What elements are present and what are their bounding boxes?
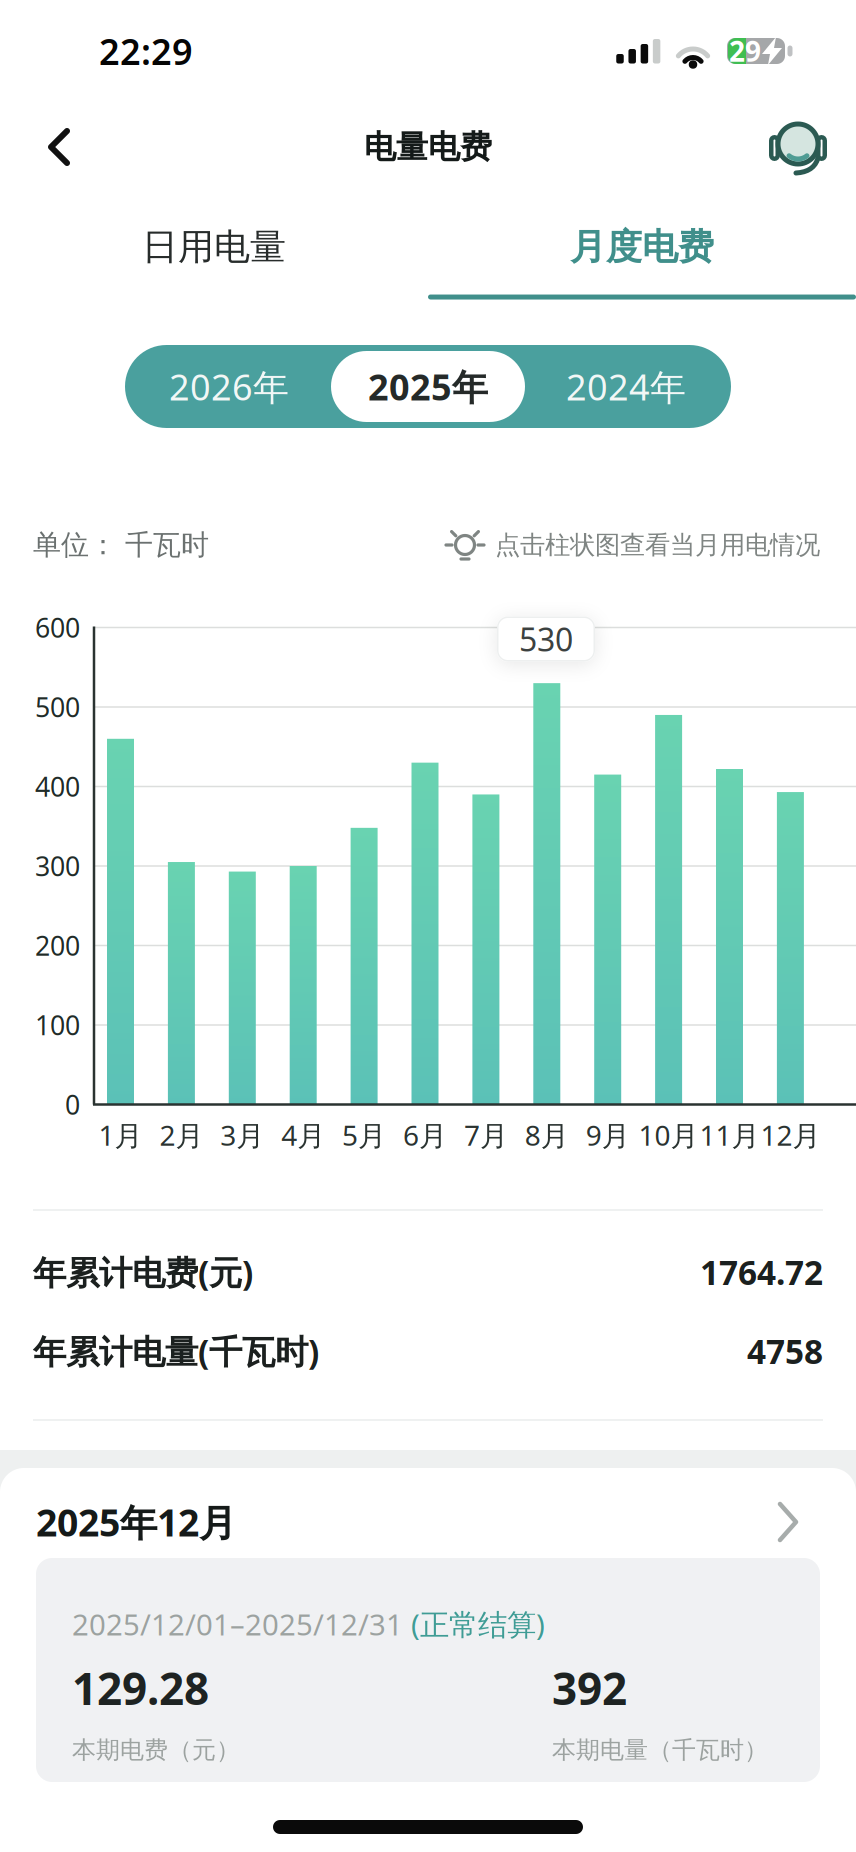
button[interactable]: 2025年 bbox=[328, 345, 528, 428]
button[interactable]: 2025年12月 bbox=[33, 1482, 823, 1562]
button[interactable] bbox=[290, 866, 317, 1104]
button[interactable]: 2024年 bbox=[526, 345, 726, 428]
staticText: 300 bbox=[35, 848, 80, 884]
staticText: 392 bbox=[552, 1659, 627, 1717]
button[interactable]: 2026年 bbox=[129, 345, 329, 428]
staticText: 29 bbox=[729, 32, 761, 70]
staticText: 9月 bbox=[586, 1116, 630, 1154]
staticText: 530 bbox=[519, 618, 573, 660]
staticText: 10月 bbox=[639, 1116, 699, 1154]
staticText: 单位： 千瓦时 bbox=[33, 528, 209, 562]
staticText: 年累计电量(千瓦时) bbox=[33, 1329, 319, 1373]
button[interactable] bbox=[533, 683, 560, 1105]
staticText: 8月 bbox=[525, 1116, 569, 1154]
button[interactable]: 月度电费 bbox=[428, 199, 856, 295]
staticText: 2025/12/01–2025/12/31 bbox=[72, 1604, 411, 1643]
staticText: 月度电费 bbox=[570, 225, 714, 269]
staticText: 4758 bbox=[747, 1329, 823, 1373]
staticText: 1764.72 bbox=[700, 1250, 823, 1294]
staticText: 400 bbox=[35, 769, 80, 804]
staticText: 11月 bbox=[699, 1116, 759, 1154]
staticText: 0 bbox=[65, 1087, 80, 1122]
staticText: 600 bbox=[35, 610, 80, 645]
button[interactable] bbox=[411, 763, 438, 1105]
staticText: 点击柱状图查看当月用电情况 bbox=[495, 529, 820, 560]
staticText: 2024年 bbox=[566, 363, 686, 410]
staticText: 2026年 bbox=[169, 363, 289, 410]
button[interactable] bbox=[107, 739, 134, 1104]
staticText: 129.28 bbox=[72, 1659, 209, 1717]
staticText: (正常结算) bbox=[411, 1604, 545, 1643]
staticText: 6月 bbox=[403, 1116, 447, 1154]
staticText: 2月 bbox=[159, 1116, 203, 1154]
button[interactable] bbox=[716, 769, 743, 1104]
button[interactable] bbox=[472, 794, 499, 1105]
staticText: 本期电费（元） bbox=[72, 1735, 240, 1765]
staticText: 本期电量（千瓦时） bbox=[552, 1735, 768, 1765]
staticText: 2025年12月 bbox=[36, 1497, 236, 1547]
staticText: 年累计电费(元) bbox=[33, 1250, 253, 1294]
staticText: 22:29 bbox=[99, 27, 193, 75]
staticText: 5月 bbox=[342, 1116, 386, 1154]
staticText: 12月 bbox=[760, 1116, 820, 1154]
staticText: 4月 bbox=[281, 1116, 325, 1154]
staticText: 7月 bbox=[464, 1116, 508, 1154]
button[interactable] bbox=[168, 862, 195, 1104]
button[interactable] bbox=[351, 828, 378, 1104]
staticText: 电量电费 bbox=[364, 127, 492, 167]
button[interactable] bbox=[229, 872, 256, 1104]
button[interactable] bbox=[766, 114, 830, 178]
staticText: 3月 bbox=[220, 1116, 264, 1154]
button[interactable] bbox=[29, 117, 89, 177]
staticText: 100 bbox=[35, 1007, 80, 1043]
button[interactable] bbox=[594, 775, 621, 1104]
button[interactable] bbox=[777, 792, 804, 1104]
staticText: 200 bbox=[35, 928, 80, 963]
staticText: 1月 bbox=[98, 1116, 142, 1154]
staticText: 2025年 bbox=[368, 363, 488, 410]
button[interactable] bbox=[655, 715, 682, 1105]
staticText: 日用电量 bbox=[142, 225, 286, 269]
staticText: 500 bbox=[35, 689, 80, 725]
button[interactable]: 日用电量 bbox=[0, 199, 428, 295]
